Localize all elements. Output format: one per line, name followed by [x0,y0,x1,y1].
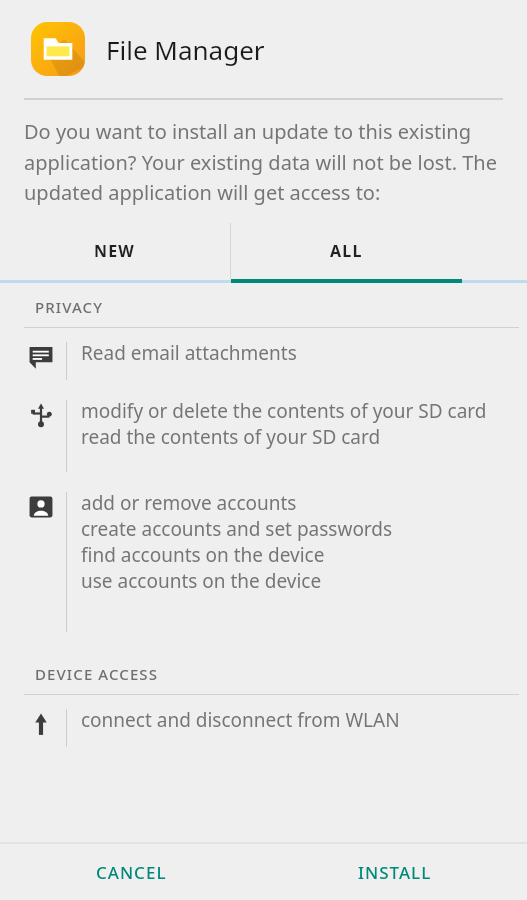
button[interactable]: INSTALL [342,851,448,894]
staticText: create accounts and set passwords [81,516,393,542]
staticText: Read email attachments [81,340,297,366]
button[interactable]: Wi-Fi permission [0,695,527,753]
staticText: DEVICE ACCESS [35,664,159,684]
staticText: use accounts on the device [81,568,322,594]
button[interactable]: ALL [231,223,462,279]
button[interactable]: CANCEL [80,851,183,894]
button[interactable]: Email attachments permission [0,328,527,386]
button[interactable]: Accounts permission [0,478,527,638]
staticText: NEW [94,240,136,262]
staticText: modify or delete the contents of your SD… [81,398,487,424]
staticText: Do you want to install an update to this… [24,118,505,205]
staticText: read the contents of your SD card [81,424,381,450]
staticText: ALL [330,240,363,262]
staticText: PRIVACY [35,297,104,317]
staticText: add or remove accounts [81,490,297,516]
button[interactable]: Storage permission [0,386,527,478]
button[interactable]: NEW [0,223,230,279]
staticText: CANCEL [96,861,167,884]
staticText: File Manager [106,32,265,67]
staticText: connect and disconnect from WLAN [81,707,400,733]
staticText: INSTALL [358,861,432,884]
staticText: find accounts on the device [81,542,325,568]
